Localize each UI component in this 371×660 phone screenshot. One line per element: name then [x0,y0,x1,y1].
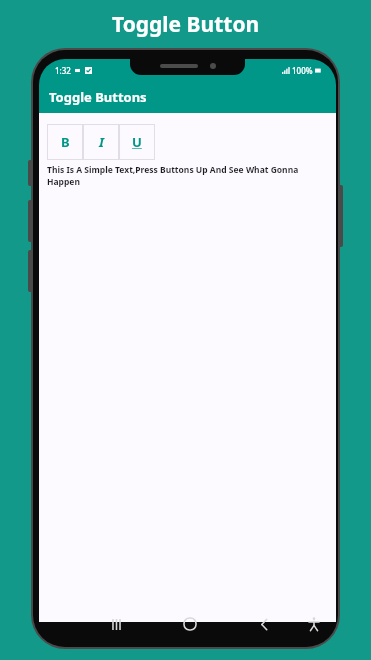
button[interactable]: Accessibility [299,609,329,639]
staticText: Toggle Buttons [49,88,147,106]
button[interactable]: Recent apps [101,609,131,639]
staticText: Toggle Button [112,10,260,39]
staticText: 1:32 [55,65,71,76]
staticText: This Is A Simple Text,Press Buttons Up A… [47,164,320,188]
button[interactable]: I [83,124,119,160]
staticText: 100% [292,65,313,76]
button[interactable]: B [47,124,83,160]
button[interactable]: Home [175,609,205,639]
staticText: I [99,133,104,151]
staticText: U [132,133,142,151]
staticText: B [61,133,70,151]
button[interactable]: U [119,124,155,160]
button[interactable]: Back [249,609,279,639]
